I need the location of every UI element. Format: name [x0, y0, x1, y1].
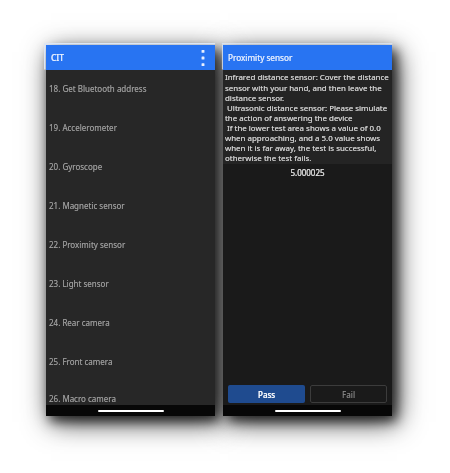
- staticText: CIT: [51, 52, 65, 63]
- staticText: 21. Magnetic sensor: [49, 200, 125, 211]
- button[interactable]: 21. Magnetic sensor: [46, 187, 215, 226]
- button[interactable]: 19. Accelerometer: [46, 109, 215, 148]
- staticText: Proximity sensor: [228, 52, 293, 63]
- staticText: 26. Macro camera: [49, 393, 116, 404]
- staticText: 19. Accelerometer: [49, 122, 117, 133]
- staticText: Pass: [258, 389, 276, 400]
- staticText: 25. Front camera: [49, 356, 113, 367]
- button[interactable]: 22. Proximity sensor: [46, 226, 215, 265]
- staticText: Infrared distance sensor: Cover the dist…: [225, 72, 391, 163]
- button[interactable]: More options: [195, 50, 211, 66]
- staticText: 5.000025: [223, 167, 392, 178]
- staticText: 22. Proximity sensor: [49, 239, 126, 250]
- button[interactable]: Fail: [310, 385, 387, 403]
- staticText: 24. Rear camera: [49, 317, 110, 328]
- button[interactable]: 23. Light sensor: [46, 265, 215, 304]
- staticText: 23. Light sensor: [49, 278, 109, 289]
- button[interactable]: 24. Rear camera: [46, 304, 215, 343]
- button[interactable]: 25. Front camera: [46, 343, 215, 382]
- button[interactable]: 18. Get Bluetooth address: [46, 70, 215, 109]
- staticText: 20. Gyroscope: [49, 161, 103, 172]
- button[interactable]: 20. Gyroscope: [46, 148, 215, 187]
- button[interactable]: Pass: [228, 385, 305, 403]
- staticText: Fail: [342, 389, 356, 400]
- staticText: 18. Get Bluetooth address: [49, 83, 147, 94]
- button[interactable]: 26. Macro camera: [46, 382, 215, 416]
